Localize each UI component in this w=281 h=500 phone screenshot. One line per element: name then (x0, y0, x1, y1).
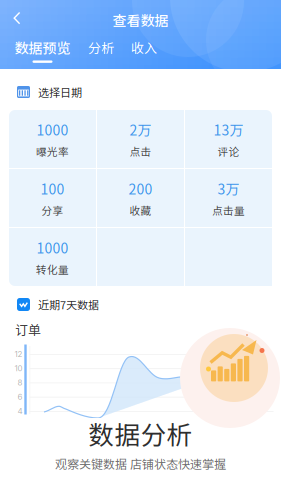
staticText: 转化量 (36, 261, 69, 277)
button[interactable]: 3万 (185, 169, 272, 227)
staticText: 选择日期 (38, 84, 82, 100)
button[interactable]: 分析 (88, 38, 114, 62)
button[interactable]: 选择日期 (17, 83, 82, 101)
staticText: 6 (17, 392, 22, 402)
staticText: 12 (14, 349, 22, 359)
staticText: 收入 (131, 38, 157, 57)
staticText: 1000 (36, 119, 68, 139)
button[interactable]: 2万 (97, 110, 184, 168)
staticText: 数据预览 (14, 37, 70, 57)
staticText: 近期7天数据 (38, 296, 99, 312)
button[interactable]: 200 (97, 169, 184, 227)
staticText: 分析 (88, 38, 114, 57)
staticText: 点击 (129, 143, 151, 159)
staticText: 13万 (213, 119, 243, 139)
staticText: 评论 (217, 143, 239, 159)
button[interactable]: 100 (9, 169, 96, 227)
button[interactable]: 13万 (185, 110, 272, 168)
staticText: 8 (17, 378, 22, 387)
staticText: 曝光率 (36, 143, 69, 159)
staticText: 10 (14, 363, 22, 373)
button[interactable]: 数据预览 (14, 38, 71, 62)
staticText: 分享 (41, 202, 63, 218)
staticText: 订单 (15, 320, 41, 339)
staticText: 200 (128, 178, 152, 198)
button[interactable]: Back (5, 7, 29, 29)
staticText: 数据分析 (88, 415, 192, 452)
staticText: 1000 (36, 237, 68, 257)
staticText: 3万 (217, 178, 239, 198)
staticText: 收藏 (129, 202, 151, 218)
staticText: 查看数据 (112, 10, 168, 30)
staticText: 观察关键数据 店铺状态快速掌握 (55, 455, 226, 472)
staticText: 2万 (129, 119, 151, 139)
button[interactable]: 收入 (131, 38, 157, 62)
staticText: 4 (17, 406, 22, 416)
button[interactable]: 1000 (9, 228, 96, 286)
staticText: 点击量 (212, 202, 245, 218)
button[interactable]: 1000 (9, 110, 96, 168)
staticText: 100 (40, 178, 64, 198)
